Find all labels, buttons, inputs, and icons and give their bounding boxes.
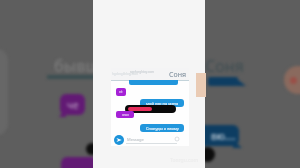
staticText: мой пес на меня	[146, 101, 179, 106]
staticText: sqvhcrghtoy.com	[130, 70, 155, 74]
button[interactable]: её	[116, 88, 126, 96]
button[interactable]: Send	[114, 135, 124, 145]
staticText: че	[67, 98, 79, 112]
staticText: Соня	[205, 55, 244, 77]
button[interactable]: hgcbngkhbqy.com	[111, 68, 189, 80]
button[interactable]: мой пес на меня	[140, 99, 184, 107]
button[interactable]	[129, 80, 178, 85]
button[interactable]: Message	[126, 135, 186, 145]
button[interactable]: спал	[116, 111, 134, 118]
staticText: Спокуды я взяму	[146, 126, 179, 131]
button[interactable]: Спокуды я взяму	[140, 124, 184, 132]
staticText: бывш	[54, 55, 101, 77]
staticText: hgcbngkhbqy.com	[112, 72, 139, 76]
staticText: Message	[127, 137, 144, 142]
staticText: спал	[122, 113, 129, 117]
staticText: вю....	[211, 129, 236, 143]
button[interactable]	[125, 105, 176, 113]
staticText: её	[119, 90, 123, 94]
staticText: Соня	[169, 70, 186, 80]
